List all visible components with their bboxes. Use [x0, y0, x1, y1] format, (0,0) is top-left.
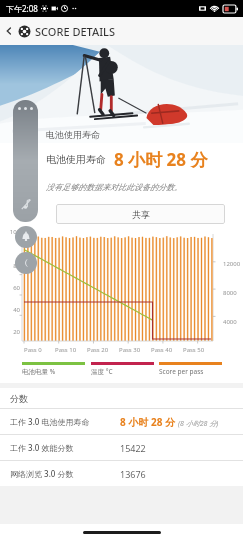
staticText: 工作 3.0 效能分数	[10, 442, 74, 453]
staticText: 下午2:08	[6, 3, 38, 14]
staticText: Score per pass	[159, 367, 204, 376]
staticText: 4000	[223, 318, 237, 326]
button[interactable]: 网络浏览 3.0 分数	[0, 461, 243, 486]
staticText: 12000	[223, 260, 241, 268]
staticText: 40	[0, 306, 20, 314]
staticText: SCORE DETAILS	[35, 24, 115, 39]
staticText: Pass 30	[119, 346, 141, 354]
staticText: 共享	[132, 209, 150, 220]
staticText: 100	[0, 228, 20, 236]
button[interactable]: 共享	[56, 204, 225, 224]
button[interactable]: 工作 3.0 电池使用寿命	[0, 409, 243, 434]
staticText: 电池电量 %	[22, 367, 56, 376]
staticText: Pass 0	[24, 346, 42, 354]
button[interactable]: 工作 3.0 效能分数	[0, 435, 243, 460]
staticText: 13676	[120, 468, 146, 480]
button[interactable]: Back	[0, 22, 18, 40]
staticText: (8 小时28 分)	[178, 419, 219, 429]
button[interactable]: Home	[83, 531, 161, 534]
staticText: Pass 40	[151, 346, 173, 354]
staticText: 8 小时 28 分	[114, 148, 208, 171]
staticText: 电池使用寿命	[46, 129, 100, 140]
staticText: Pass 20	[87, 346, 109, 354]
staticText: Pass 50	[183, 346, 205, 354]
staticText: 20	[0, 328, 20, 336]
staticText: 工作 3.0 电池使用寿命	[10, 416, 90, 427]
staticText: 80	[0, 262, 20, 270]
staticText: 分数	[10, 393, 28, 404]
button[interactable]: 电池使用寿命	[0, 143, 243, 175]
staticText: 电池使用寿命	[46, 153, 106, 166]
button[interactable]: Notifications	[15, 226, 37, 248]
staticText: 没有足够的数据来对比此设备的分数。	[46, 182, 182, 192]
staticText: 15422	[120, 442, 146, 454]
staticText: 60	[0, 284, 20, 292]
staticText: 温度 °C	[91, 367, 113, 376]
staticText: Pass 10	[55, 346, 77, 354]
button[interactable]: Quick panel	[13, 100, 38, 222]
staticText: 8000	[223, 289, 237, 297]
staticText: 网络浏览 3.0 分数	[10, 468, 74, 479]
button[interactable]: Do not disturb	[15, 252, 37, 274]
staticText: 8 小时 28 分	[120, 415, 175, 429]
